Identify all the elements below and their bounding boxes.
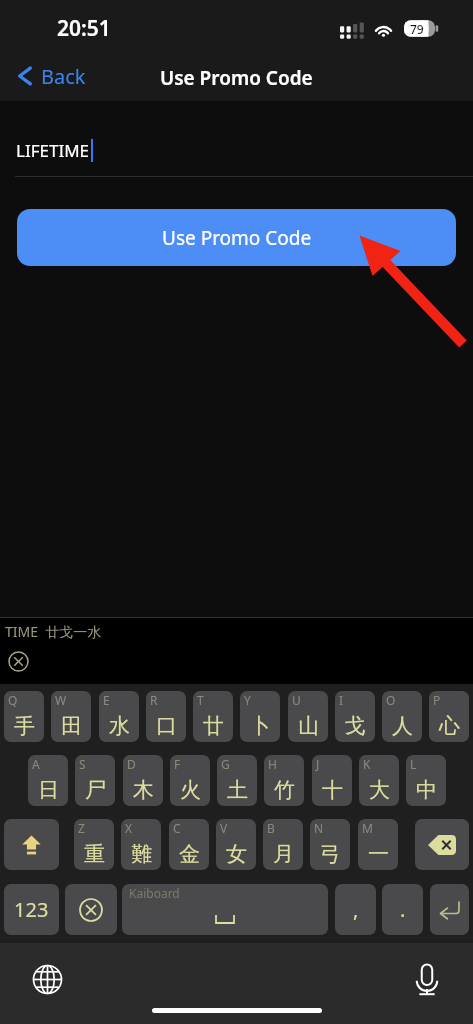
- button[interactable]: O: [382, 691, 422, 742]
- staticText: 79: [410, 21, 424, 37]
- button[interactable]: C: [169, 819, 209, 870]
- staticText: 口: [156, 713, 177, 739]
- staticText: LIFETIME: [16, 139, 90, 162]
- staticText: ,: [353, 896, 359, 923]
- staticText: P: [433, 692, 441, 708]
- staticText: 竹: [274, 777, 295, 803]
- staticText: T: [197, 692, 204, 708]
- staticText: 大: [369, 777, 390, 803]
- button[interactable]: S: [75, 755, 115, 806]
- button[interactable]: Y: [240, 691, 280, 742]
- staticText: 山: [298, 713, 319, 739]
- button[interactable]: G: [217, 755, 257, 806]
- button[interactable]: B: [263, 819, 303, 870]
- staticText: TIME 廿戈一水: [5, 622, 102, 641]
- button[interactable]: T: [193, 691, 233, 742]
- staticText: 水: [109, 713, 130, 739]
- staticText: C: [173, 820, 181, 836]
- button[interactable]: X: [121, 819, 161, 870]
- button[interactable]: 123: [4, 884, 59, 935]
- staticText: 日: [38, 777, 59, 803]
- button[interactable]: Clear input: [65, 884, 117, 935]
- button[interactable]: Switch keyboard language: [29, 961, 66, 998]
- staticText: S: [79, 756, 86, 772]
- button[interactable]: H: [264, 755, 304, 806]
- staticText: 手: [14, 713, 35, 739]
- staticText: 火: [180, 777, 201, 803]
- button[interactable]: V: [216, 819, 256, 870]
- staticText: 弓: [320, 841, 341, 867]
- staticText: D: [127, 756, 136, 772]
- staticText: 戈: [345, 713, 366, 739]
- staticText: X: [125, 820, 133, 836]
- staticText: B: [267, 820, 275, 836]
- staticText: V: [220, 820, 228, 836]
- staticText: I: [339, 692, 344, 708]
- staticText: 田: [61, 713, 82, 739]
- staticText: H: [268, 756, 277, 772]
- staticText: 十: [322, 777, 343, 803]
- button[interactable]: Shift: [4, 819, 59, 870]
- staticText: M: [362, 820, 373, 836]
- staticText: N: [314, 820, 324, 836]
- button[interactable]: A: [28, 755, 68, 806]
- button[interactable]: I: [335, 691, 375, 742]
- button[interactable]: K: [359, 755, 399, 806]
- staticText: 重: [84, 841, 105, 867]
- button[interactable]: D: [123, 755, 163, 806]
- staticText: Kaiboard: [129, 885, 180, 901]
- staticText: 中: [416, 777, 437, 803]
- button[interactable]: U: [288, 691, 328, 742]
- staticText: A: [32, 756, 40, 772]
- staticText: R: [150, 692, 158, 708]
- button[interactable]: W: [51, 691, 91, 742]
- button[interactable]: N: [310, 819, 350, 870]
- button[interactable]: Kaiboard: [122, 884, 328, 935]
- staticText: L: [410, 756, 417, 772]
- button[interactable]: Z: [74, 819, 114, 870]
- staticText: Z: [78, 820, 85, 836]
- button[interactable]: ,: [335, 884, 376, 935]
- staticText: 人: [392, 713, 413, 739]
- button[interactable]: Clear candidates: [5, 648, 31, 674]
- staticText: 土: [227, 777, 248, 803]
- staticText: F: [174, 756, 181, 772]
- staticText: O: [386, 692, 396, 708]
- staticText: E: [103, 692, 110, 708]
- staticText: Use Promo Code: [160, 65, 313, 91]
- staticText: 女: [226, 841, 247, 867]
- staticText: 一: [368, 841, 389, 867]
- button[interactable]: M: [358, 819, 398, 870]
- staticText: Q: [8, 692, 18, 708]
- button[interactable]: Q: [4, 691, 44, 742]
- staticText: 難: [131, 841, 152, 867]
- staticText: 20:51: [57, 14, 111, 43]
- staticText: 金: [179, 841, 200, 867]
- staticText: Back: [41, 63, 86, 90]
- button[interactable]: F: [170, 755, 210, 806]
- button[interactable]: E: [99, 691, 139, 742]
- staticText: J: [316, 756, 320, 772]
- staticText: 木: [133, 777, 154, 803]
- staticText: 123: [14, 896, 49, 923]
- button[interactable]: P: [429, 691, 469, 742]
- button[interactable]: J: [312, 755, 352, 806]
- button[interactable]: L: [406, 755, 446, 806]
- button[interactable]: .: [382, 884, 423, 935]
- staticText: 月: [273, 841, 294, 867]
- button[interactable]: Dictate: [408, 961, 445, 998]
- button[interactable]: R: [146, 691, 186, 742]
- button[interactable]: Return: [430, 884, 469, 935]
- staticText: 卜: [250, 713, 271, 739]
- staticText: Use Promo Code: [162, 225, 312, 251]
- staticText: 尸: [85, 777, 106, 803]
- staticText: K: [363, 756, 371, 772]
- button[interactable]: Backspace: [415, 819, 469, 870]
- staticText: W: [55, 692, 67, 708]
- staticText: .: [400, 896, 406, 923]
- button[interactable]: Use Promo Code: [17, 209, 456, 266]
- staticText: Y: [244, 692, 251, 708]
- staticText: 廿: [203, 713, 224, 739]
- button[interactable]: Back: [0, 58, 98, 94]
- staticText: U: [292, 692, 301, 708]
